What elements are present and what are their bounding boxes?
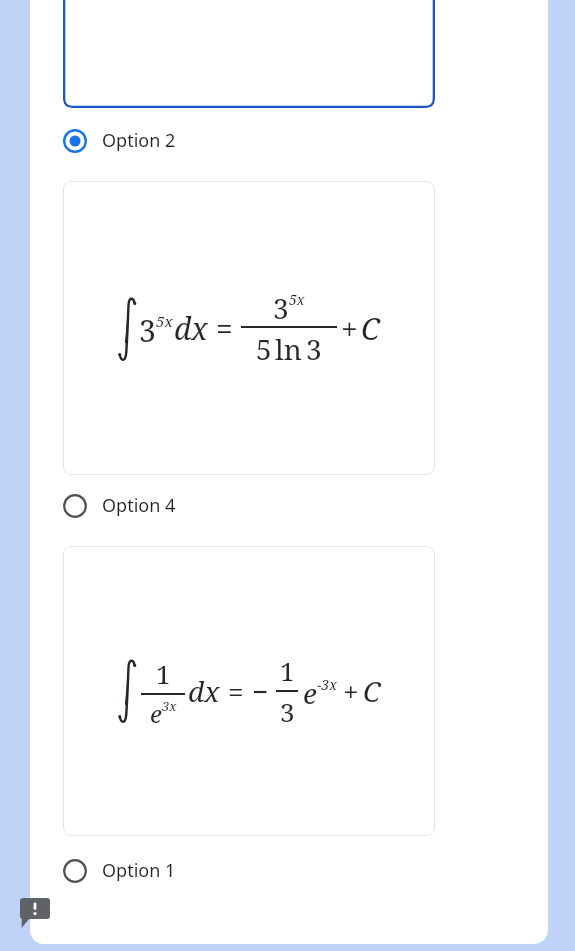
staticText: 3 xyxy=(273,289,289,324)
button[interactable] xyxy=(63,0,435,108)
staticText: ln xyxy=(275,330,302,368)
staticText: 1 xyxy=(156,656,171,691)
staticText: 1 xyxy=(280,653,295,688)
staticText: −3x xyxy=(317,675,337,694)
staticText: 5x xyxy=(289,290,305,309)
staticText: 3x xyxy=(162,697,177,715)
staticText: dx xyxy=(174,308,208,349)
button[interactable]: Option 1 xyxy=(30,850,548,891)
staticText: e xyxy=(150,697,162,727)
staticText: Option 1 xyxy=(102,858,176,883)
staticText: C xyxy=(361,308,380,349)
staticText: C xyxy=(363,672,381,710)
staticText: 3 xyxy=(139,310,156,348)
staticText: 3 xyxy=(280,694,295,729)
button[interactable]: Option 4 xyxy=(30,485,548,526)
staticText: Option 2 xyxy=(102,128,176,153)
staticText: 3 xyxy=(306,330,322,368)
button[interactable]: 1 xyxy=(63,546,435,836)
staticText: = xyxy=(216,308,233,349)
staticText: 5 xyxy=(256,330,272,368)
staticText: + xyxy=(343,672,359,710)
staticText: Option 4 xyxy=(102,493,176,518)
staticText: dx xyxy=(188,672,220,710)
button[interactable]: 3 xyxy=(63,181,435,475)
button[interactable]: Send feedback xyxy=(18,896,52,930)
staticText: e xyxy=(303,674,317,709)
staticText: 5x xyxy=(156,311,173,331)
staticText: + xyxy=(341,308,358,349)
staticText: = xyxy=(228,672,244,710)
staticText: − xyxy=(252,672,269,710)
button[interactable]: Option 2 xyxy=(30,120,548,161)
